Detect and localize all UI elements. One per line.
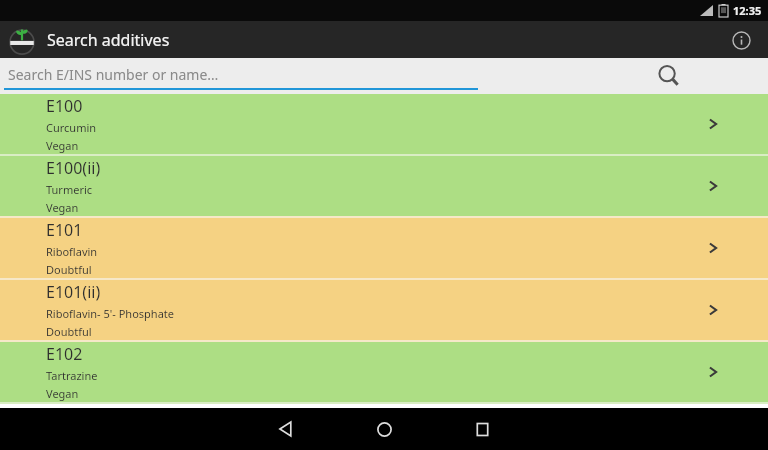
staticText: E101 [46,219,83,241]
staticText: Search additives [47,29,170,51]
staticText: Doubtful [46,262,92,277]
button[interactable]: E100 [0,94,768,154]
staticText: Doubtful [46,324,92,339]
staticText: Riboflavin- 5'- Phosphate [46,306,174,321]
button[interactable]: E102 [0,342,768,402]
staticText: Turmeric [46,182,93,197]
staticText: Search E/INS number or name… [8,65,219,84]
staticText: Tartrazine [46,368,98,383]
staticText: E101(ii) [46,281,101,303]
staticText: E102 [46,343,83,365]
staticText: Vegan [46,138,79,153]
button[interactable]: Home [355,408,413,450]
staticText: Riboflavin [46,244,98,259]
staticText: Curcumin [46,120,97,135]
button[interactable]: E101(ii) [0,280,768,340]
button[interactable]: E101 [0,218,768,278]
button[interactable]: Search [652,59,686,93]
button[interactable]: Info [726,25,756,55]
staticText: Vegan [46,386,79,401]
staticText: E100 [46,95,83,117]
staticText: 12:35 [733,3,762,18]
staticText: E100(ii) [46,157,101,179]
staticText: Vegan [46,200,79,215]
button[interactable]: Search E/INS number or name… [0,58,768,94]
button[interactable]: Recent apps [453,408,511,450]
button[interactable]: E100(ii) [0,156,768,216]
button[interactable]: Back [257,408,315,450]
